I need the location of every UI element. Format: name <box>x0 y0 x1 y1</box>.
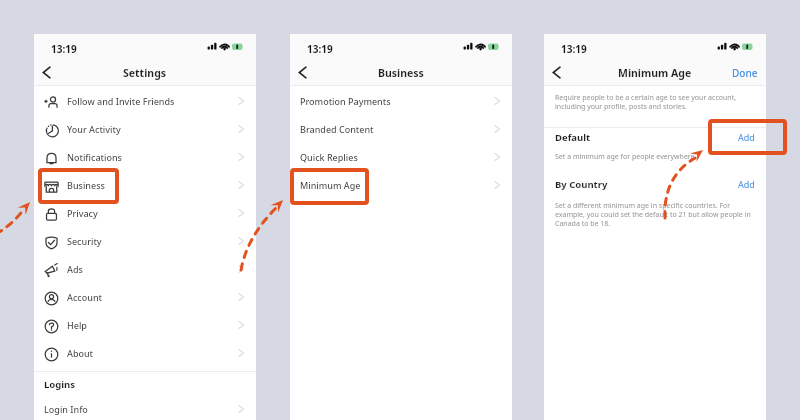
button[interactable]: Back <box>548 63 567 82</box>
staticText: Logins <box>44 378 76 391</box>
button[interactable]: Privacy <box>34 199 256 227</box>
staticText: Business <box>67 179 105 191</box>
staticText: Default <box>555 131 591 144</box>
staticText: Minimum Age <box>300 179 361 191</box>
button[interactable]: Add By Country <box>738 178 755 190</box>
button[interactable]: Minimum Age <box>290 171 512 199</box>
button[interactable]: Security <box>34 227 256 255</box>
staticText: Require people to be a certain age to se… <box>555 93 737 111</box>
button[interactable]: Back <box>38 63 57 82</box>
button[interactable]: Business <box>34 171 256 199</box>
button[interactable]: Done <box>732 60 758 85</box>
staticText: By Country <box>555 178 608 191</box>
staticText: 13:19 <box>307 42 333 56</box>
staticText: Your Activity <box>67 123 121 135</box>
staticText: Add <box>738 178 755 190</box>
staticText: About <box>67 347 94 359</box>
staticText: Login Info <box>44 403 88 415</box>
staticText: Minimum Age <box>618 66 692 80</box>
button[interactable]: Account <box>34 283 256 311</box>
staticText: Quick Replies <box>300 151 358 163</box>
staticText: Follow and Invite Friends <box>67 95 175 107</box>
button[interactable]: Branded Content <box>290 115 512 143</box>
button[interactable]: Business highlight <box>38 168 119 204</box>
staticText: Promotion Payments <box>300 95 391 107</box>
staticText: 13:19 <box>51 42 77 56</box>
staticText: Settings <box>123 66 167 80</box>
button[interactable]: Add Default <box>738 131 755 143</box>
button[interactable]: About <box>34 339 256 367</box>
button[interactable]: Back <box>294 63 313 82</box>
staticText: Business <box>378 66 424 80</box>
button[interactable]: Minimum Age highlight <box>290 168 369 205</box>
staticText: Account <box>67 291 102 303</box>
button[interactable]: Notifications <box>34 143 256 171</box>
staticText: Notifications <box>67 151 122 163</box>
staticText: Add <box>738 131 755 143</box>
staticText: Ads <box>67 263 83 275</box>
staticText: Set a different minimum age in specific … <box>555 201 751 228</box>
staticText: Branded Content <box>300 123 374 135</box>
button[interactable]: Follow and Invite Friends <box>34 87 256 115</box>
staticText: Set a minimum age for people everywhere. <box>555 152 697 162</box>
staticText: Privacy <box>67 207 98 219</box>
button[interactable]: Add highlight <box>708 119 787 155</box>
button[interactable]: Help <box>34 311 256 339</box>
button[interactable]: Promotion Payments <box>290 87 512 115</box>
button[interactable]: Quick Replies <box>290 143 512 171</box>
button[interactable]: Ads <box>34 255 256 283</box>
staticText: Done <box>732 66 758 80</box>
button[interactable]: Your Activity <box>34 115 256 143</box>
staticText: 13:19 <box>561 42 587 56</box>
button[interactable]: Login Info <box>34 397 256 420</box>
staticText: Help <box>67 319 87 331</box>
staticText: Security <box>67 235 102 247</box>
